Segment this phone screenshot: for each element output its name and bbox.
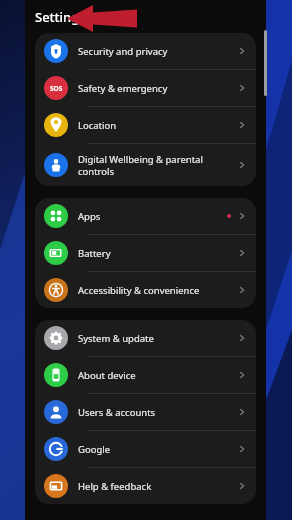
staticText: Apps <box>78 210 221 223</box>
button[interactable]: Location <box>35 107 256 143</box>
staticText: Google <box>78 443 231 456</box>
button[interactable]: Help & feedback <box>35 468 256 504</box>
button[interactable]: SOS <box>35 70 256 106</box>
button[interactable]: Accessibility & convenience <box>35 272 256 308</box>
staticText: Settings <box>35 8 86 26</box>
staticText: Location <box>78 119 231 132</box>
staticText: Users & accounts <box>78 406 231 419</box>
staticText: About device <box>78 369 231 382</box>
staticText: Accessibility & convenience <box>78 284 231 297</box>
staticText: Battery <box>78 247 231 260</box>
button[interactable]: Security and privacy <box>35 33 256 69</box>
button[interactable]: System & update <box>35 320 256 356</box>
button[interactable]: Digital Wellbeing & parental controls <box>35 144 256 186</box>
staticText: Help & feedback <box>78 480 231 493</box>
staticText: SOS <box>50 84 63 93</box>
button[interactable]: Users & accounts <box>35 394 256 430</box>
staticText: Digital Wellbeing & parental controls <box>78 153 231 178</box>
staticText: System & update <box>78 332 231 345</box>
button[interactable]: Apps <box>35 198 256 234</box>
button[interactable]: Google <box>35 431 256 467</box>
staticText: Safety & emergency <box>78 82 231 95</box>
staticText: Security and privacy <box>78 45 231 58</box>
button[interactable]: About device <box>35 357 256 393</box>
button[interactable]: Battery <box>35 235 256 271</box>
